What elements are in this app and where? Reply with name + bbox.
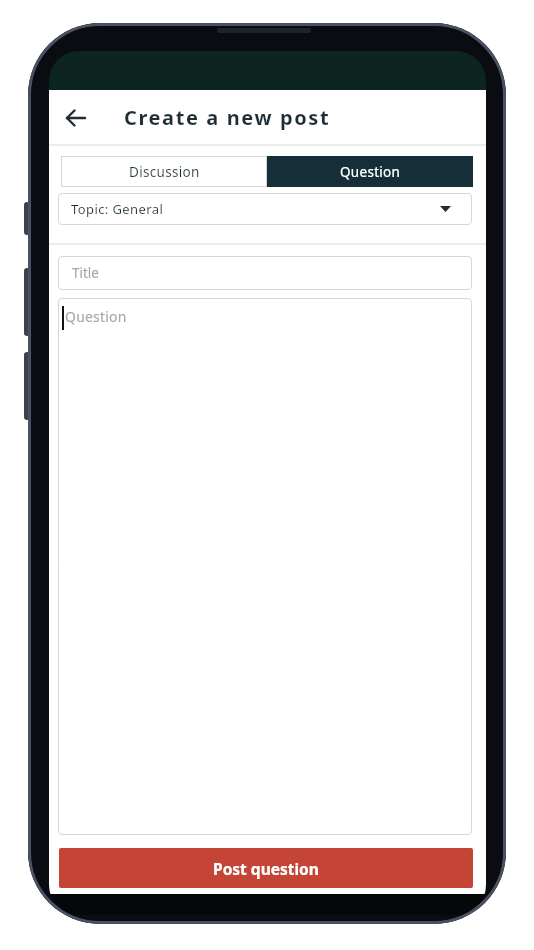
staticText: Question <box>65 307 127 326</box>
button[interactable]: Post question <box>59 848 473 888</box>
staticText: Question <box>340 163 401 181</box>
staticText: Title <box>72 264 99 282</box>
button[interactable]: Question <box>58 298 472 835</box>
button[interactable]: Question <box>267 156 473 187</box>
staticText: Post question <box>213 858 319 879</box>
button[interactable]: Title <box>58 256 472 290</box>
staticText: Create a new post <box>124 104 331 131</box>
button[interactable]: Discussion <box>61 156 267 187</box>
staticText: Topic: General <box>71 200 164 218</box>
button[interactable]: Topic: General <box>58 193 472 225</box>
button[interactable] <box>62 104 90 132</box>
staticText: Discussion <box>129 163 200 181</box>
